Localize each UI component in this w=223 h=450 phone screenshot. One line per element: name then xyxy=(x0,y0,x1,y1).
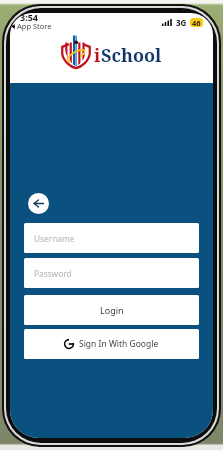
staticText: Password xyxy=(34,268,72,279)
button[interactable]: Login xyxy=(24,295,199,325)
staticText: 3G xyxy=(176,17,187,28)
staticText: Username xyxy=(34,233,75,244)
button[interactable]: Username xyxy=(24,223,199,253)
staticText: i xyxy=(94,43,101,68)
staticText: School xyxy=(101,43,162,68)
button[interactable]: Sign In With Google xyxy=(24,329,199,359)
staticText: Login xyxy=(100,304,124,316)
staticText: Sign In With Google xyxy=(79,338,159,350)
button[interactable]: Password xyxy=(24,258,199,288)
staticText: 46 xyxy=(192,18,201,27)
staticText: App Store xyxy=(17,21,52,31)
staticText: 3:54 xyxy=(20,13,38,23)
button[interactable]: Back xyxy=(28,193,49,214)
